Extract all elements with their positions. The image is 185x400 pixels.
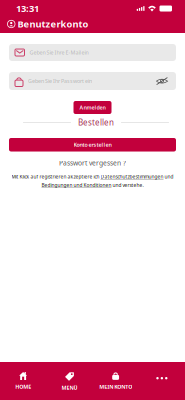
staticText: Benutzerkonto (17, 18, 88, 30)
staticText: Geben Sie Ihr Passwort ein (28, 77, 92, 85)
staticText: 13:31 (16, 2, 39, 15)
staticText: Konto erstellen (73, 141, 111, 148)
staticText: Bedingungen und Konditionen und verstehe… (41, 182, 143, 188)
staticText: MENÜ (61, 384, 77, 391)
staticText: Passwort vergessen ? (59, 158, 126, 168)
staticText: MEIN KONTO (99, 383, 132, 390)
staticText: Bestellen (78, 117, 114, 128)
button[interactable]: MENÜ (46, 362, 92, 400)
staticText: Geben Sie Ihre E-Mail ein (29, 49, 88, 56)
button[interactable]: Mehr (139, 362, 185, 400)
button[interactable]: HOME (0, 362, 46, 400)
staticText: HOME (15, 383, 31, 390)
button[interactable]: Passwort vergessen ? (59, 158, 126, 167)
staticText: Anmelden (79, 104, 105, 111)
button[interactable]: MEIN KONTO (92, 362, 139, 400)
button[interactable]: Konto erstellen (9, 138, 176, 151)
button[interactable]: Anmelden (73, 101, 111, 114)
staticText: Mit Klick auf registrieren akzeptiere ic… (11, 173, 173, 180)
